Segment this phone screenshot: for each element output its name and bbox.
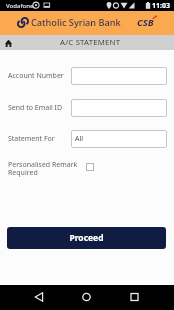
staticText: Account Number	[8, 71, 71, 81]
button[interactable]: Proceed	[7, 227, 166, 249]
button[interactable]	[71, 99, 167, 117]
staticText: Send to Email ID	[8, 103, 71, 113]
staticText: Catholic Syrian Bank	[31, 16, 121, 29]
staticText: Vodafone	[6, 2, 34, 10]
staticText: All	[75, 134, 84, 144]
button[interactable]	[71, 67, 167, 85]
button[interactable]: Home	[1, 36, 15, 50]
staticText: 11:03	[152, 1, 170, 11]
staticText: Personalised Remark Required	[8, 160, 85, 177]
staticText: Proceed	[69, 232, 104, 244]
staticText: CSB	[137, 16, 154, 29]
button[interactable]: Personalised Remark Required	[84, 161, 96, 173]
button[interactable]: All	[71, 130, 167, 148]
staticText: Statement For	[8, 134, 71, 144]
staticText: A/C STATEMENT	[60, 37, 121, 48]
